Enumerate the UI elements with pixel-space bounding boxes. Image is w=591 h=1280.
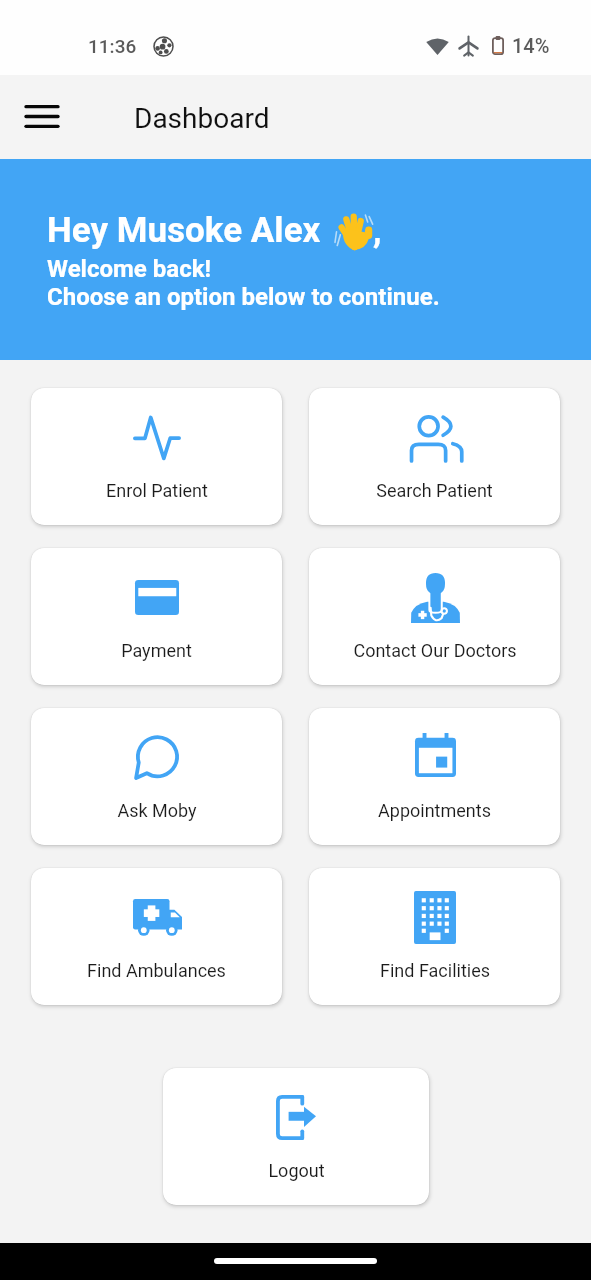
staticText: Welcome back! <box>47 255 212 283</box>
staticText: Enrol Patient <box>106 480 208 501</box>
staticText: Choose an option below to continue. <box>47 283 440 311</box>
button[interactable]: Payment <box>31 548 282 685</box>
button[interactable]: Open navigation menu <box>17 91 67 141</box>
staticText: Find Ambulances <box>87 960 226 981</box>
staticText: 11:36 <box>88 35 137 57</box>
button[interactable]: Find Ambulances <box>31 868 282 1005</box>
staticText: Contact Our Doctors <box>353 640 517 661</box>
button[interactable]: Search Patient <box>309 388 560 525</box>
staticText: Logout <box>268 1160 325 1181</box>
button[interactable]: Appointments <box>309 708 560 845</box>
staticText: Search Patient <box>376 480 493 501</box>
button[interactable]: Find Facilities <box>309 868 560 1005</box>
staticText: Appointments <box>378 800 491 821</box>
button[interactable]: Contact Our Doctors <box>309 548 560 685</box>
staticText: Hey Musoke Alex <box>47 210 321 251</box>
staticText: , <box>373 210 382 251</box>
staticText: Ask Moby <box>117 800 197 821</box>
button[interactable]: Logout <box>163 1068 429 1205</box>
button[interactable]: Enrol Patient <box>31 388 282 525</box>
button[interactable]: Ask Moby <box>31 708 282 845</box>
staticText: Payment <box>121 640 192 661</box>
staticText: Dashboard <box>134 102 270 135</box>
staticText: Find Facilities <box>380 960 490 981</box>
staticText: 14% <box>512 34 550 57</box>
